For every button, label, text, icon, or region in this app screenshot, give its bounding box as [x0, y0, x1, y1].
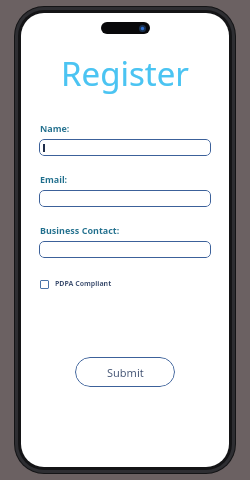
staticText: Email:	[40, 173, 68, 185]
staticText: Business Contact:	[40, 224, 120, 236]
button[interactable]: Text input field	[39, 190, 211, 207]
staticText: Register	[39, 51, 211, 96]
staticText: Submit	[107, 365, 144, 380]
staticText: PDPA Compliant	[55, 279, 112, 289]
button[interactable]: Submit	[75, 357, 175, 387]
button[interactable]: Text input field	[39, 241, 211, 258]
button[interactable]: Text input field	[39, 139, 211, 156]
staticText: Name:	[40, 122, 70, 134]
button[interactable]: PDPA Compliant	[39, 277, 113, 291]
